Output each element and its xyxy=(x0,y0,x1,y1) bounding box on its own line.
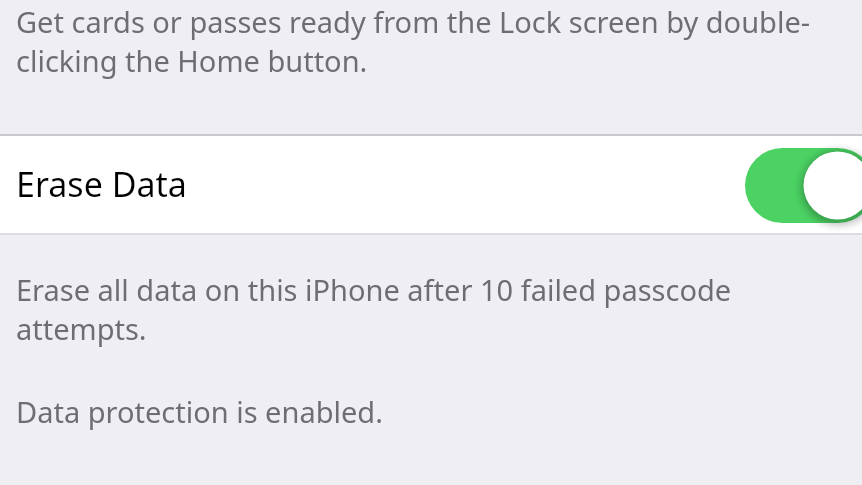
staticText: clicking the Home button. xyxy=(16,41,368,80)
staticText: Erase all data on this iPhone after 10 f… xyxy=(16,270,732,309)
staticText: Erase Data xyxy=(16,161,187,207)
staticText: Get cards or passes ready from the Lock … xyxy=(16,2,811,41)
button[interactable]: Erase Data xyxy=(0,136,862,233)
button[interactable]: Erase Data toggle, on xyxy=(745,148,862,223)
staticText: attempts. xyxy=(16,309,147,348)
staticText: Data protection is enabled. xyxy=(16,392,383,431)
